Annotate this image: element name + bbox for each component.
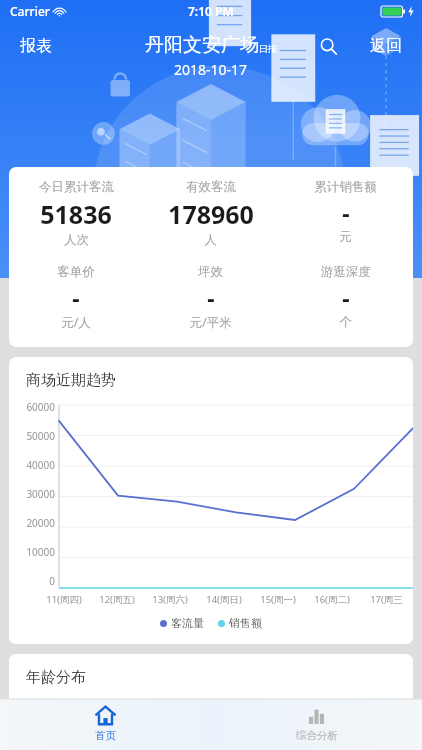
- staticText: 30000: [26, 487, 55, 501]
- button[interactable]: Search: [312, 30, 344, 62]
- staticText: 2018-10-17: [174, 60, 248, 79]
- staticText: 年龄分布: [26, 668, 86, 687]
- staticText: 13(周六): [152, 593, 188, 606]
- staticText: 7:10 PM: [188, 3, 234, 19]
- staticText: 16(周二): [314, 593, 350, 606]
- staticText: 返回: [370, 36, 402, 56]
- button[interactable]: 客单价: [9, 264, 143, 331]
- staticText: 报表: [20, 36, 52, 56]
- button[interactable]: 综合分析: [211, 699, 422, 750]
- staticText: 今日累计客流: [39, 179, 114, 195]
- staticText: 商场近期趋势: [26, 371, 116, 390]
- staticText: 12(周五): [99, 593, 135, 606]
- staticText: 51836: [40, 197, 112, 231]
- button[interactable]: 游逛深度: [278, 264, 413, 330]
- button[interactable]: 有效客流: [143, 179, 278, 248]
- staticText: 游逛深度: [321, 264, 371, 280]
- staticText: 有效客流: [186, 179, 236, 195]
- button[interactable]: 坪效: [143, 264, 278, 331]
- staticText: 丹阳文安广场: [145, 33, 259, 57]
- staticText: 人: [204, 232, 217, 248]
- staticText: 客流量: [171, 616, 204, 630]
- staticText: 0: [49, 574, 55, 588]
- staticText: 元: [339, 229, 352, 245]
- staticText: 元/人: [61, 314, 91, 331]
- staticText: 个: [339, 314, 352, 330]
- button[interactable]: 今日累计客流: [9, 179, 143, 248]
- staticText: -: [342, 197, 350, 228]
- staticText: 11(周四): [46, 593, 82, 606]
- staticText: Carrier: [10, 3, 50, 19]
- button[interactable]: 客流量: [158, 614, 206, 632]
- staticText: 17(周三: [370, 593, 403, 606]
- staticText: 销售额: [229, 616, 262, 630]
- staticText: 15(周一): [260, 593, 296, 606]
- staticText: 累计销售额: [314, 179, 377, 195]
- staticText: 20000: [26, 516, 55, 530]
- staticText: 人次: [64, 232, 89, 248]
- staticText: 日报: [259, 43, 277, 54]
- staticText: -: [72, 282, 80, 313]
- button[interactable]: 报表: [14, 32, 58, 60]
- staticText: 元/平米: [189, 314, 232, 331]
- staticText: 40000: [26, 458, 55, 472]
- staticText: 首页: [95, 729, 116, 742]
- staticText: 综合分析: [296, 729, 338, 742]
- button[interactable]: 累计销售额: [278, 179, 413, 245]
- staticText: 50000: [26, 429, 55, 443]
- button[interactable]: 首页: [0, 699, 211, 750]
- staticText: 60000: [26, 400, 55, 414]
- staticText: 14(周日): [206, 593, 242, 606]
- button[interactable]: 销售额: [216, 614, 264, 632]
- staticText: 客单价: [57, 264, 95, 280]
- staticText: -: [207, 282, 215, 313]
- staticText: 10000: [26, 545, 55, 559]
- button[interactable]: 返回: [364, 32, 408, 60]
- staticText: -: [342, 282, 350, 313]
- staticText: 坪效: [198, 264, 223, 280]
- staticText: 178960: [168, 197, 254, 231]
